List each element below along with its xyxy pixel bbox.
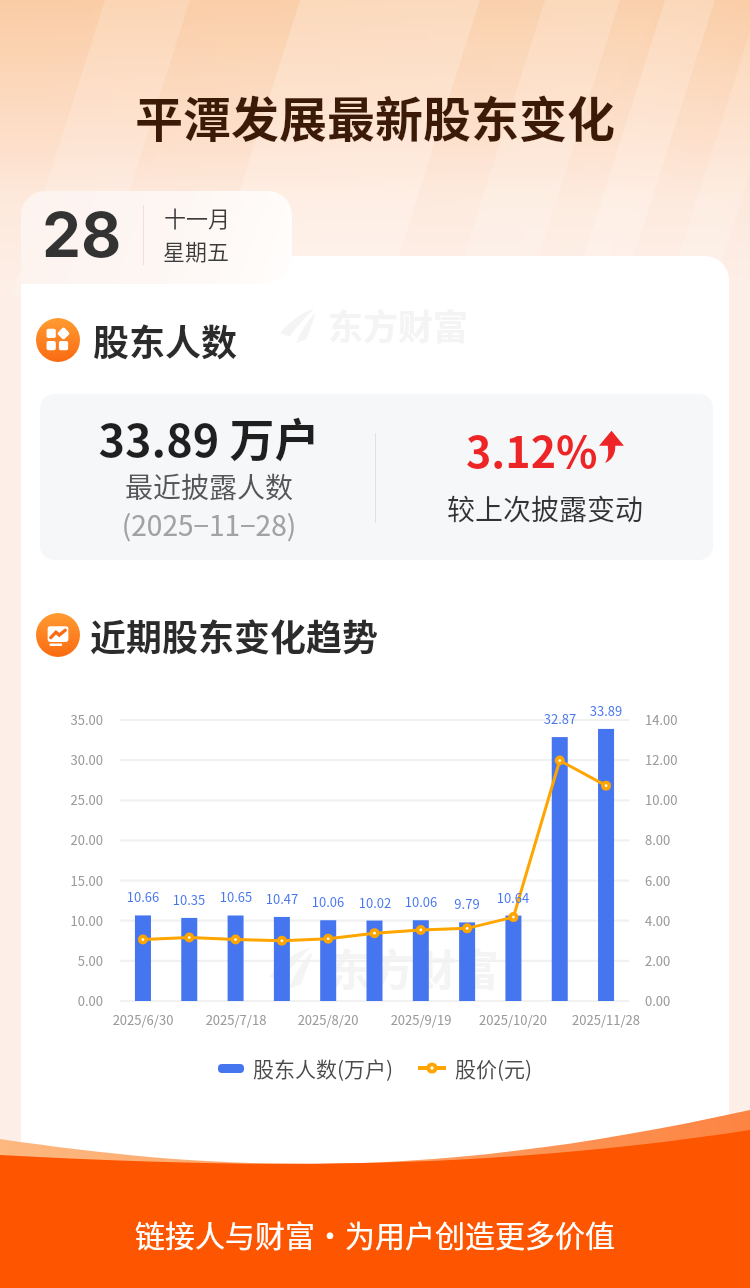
button[interactable]: 股东人数(万户) [218, 1053, 394, 1083]
staticText: 9.79 [437, 894, 497, 913]
button[interactable]: 股东人数 [36, 314, 238, 366]
staticText: 股东人数(万户) [253, 1053, 394, 1083]
staticText: 链接人与财富·为用户创造更多价值 [0, 1212, 750, 1255]
staticText: 20.00 [40, 830, 103, 849]
staticText: 33.89 [576, 701, 636, 720]
staticText: 2025/8/20 [288, 1010, 368, 1029]
staticText: 星期五 [163, 234, 230, 266]
staticText: 10.02 [345, 893, 405, 912]
staticText: 5.00 [40, 951, 103, 970]
other: 近期股东变化趋势 [36, 613, 80, 657]
button[interactable]: 近期股东变化趋势 [36, 609, 379, 661]
staticText: 十一月 [164, 201, 231, 233]
staticText: 3.12% [466, 418, 598, 480]
staticText: 35.00 [40, 710, 103, 729]
staticText: 12.00 [645, 750, 678, 769]
staticText: 平潭发展最新股东变化 [0, 81, 750, 151]
staticText: 2025/9/19 [381, 1010, 461, 1029]
staticText: (2025−11−28) [40, 504, 378, 545]
staticText: 30.00 [40, 750, 103, 769]
staticText: 10.06 [391, 892, 451, 911]
staticText: 4.00 [645, 911, 671, 930]
staticText: 2.00 [645, 951, 671, 970]
button[interactable]: 33.89 万户 [40, 394, 713, 560]
staticText: 10.64 [483, 888, 543, 907]
staticText: 10.35 [159, 890, 219, 909]
staticText: 最近披露人数 [40, 466, 378, 507]
staticText: 0.00 [645, 991, 671, 1010]
staticText: 25.00 [40, 790, 103, 809]
staticText: 10.00 [40, 911, 103, 930]
staticText: 0.00 [40, 991, 103, 1010]
staticText: 10.65 [206, 887, 266, 906]
staticText: 33.89 万户 [40, 405, 378, 470]
staticText: 15.00 [40, 871, 103, 890]
staticText: 东方财富 [328, 299, 469, 350]
staticText: 14.00 [645, 710, 678, 729]
staticText: 8.00 [645, 830, 671, 849]
staticText: 10.06 [298, 892, 358, 911]
staticText: 股东人数 [93, 314, 238, 366]
staticText: 2025/11/28 [566, 1010, 646, 1029]
staticText: 2025/6/30 [103, 1010, 183, 1029]
staticText: 东方财富 [328, 936, 499, 998]
staticText: 2025/10/20 [473, 1010, 553, 1029]
staticText: 6.00 [645, 871, 671, 890]
staticText: 10.47 [252, 889, 312, 908]
button[interactable]: 股价(元) [418, 1053, 533, 1083]
staticText: 10.66 [113, 887, 173, 906]
staticText: 32.87 [530, 709, 590, 728]
staticText: 28 [42, 197, 122, 272]
staticText: 较上次披露变动 [447, 488, 644, 529]
staticText: 10.00 [645, 790, 678, 809]
staticText: 近期股东变化趋势 [90, 609, 379, 661]
other: 股东人数 [36, 318, 80, 362]
staticText: 2025/7/18 [196, 1010, 276, 1029]
staticText: 股价(元) [455, 1053, 533, 1083]
